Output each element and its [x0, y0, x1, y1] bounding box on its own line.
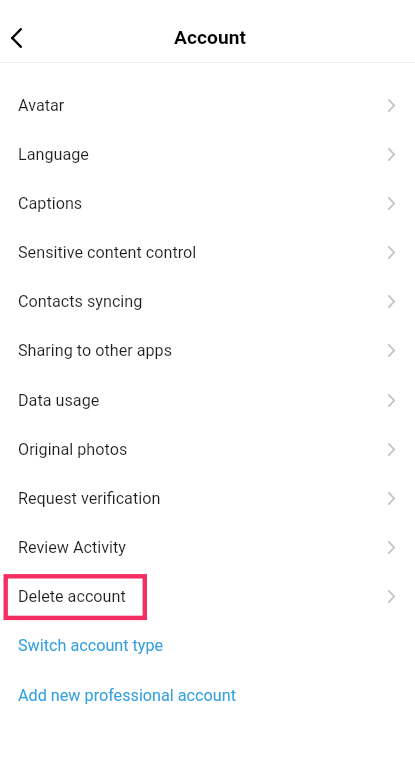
button[interactable]: Add new professional account: [0, 671, 415, 720]
button[interactable]: Delete account: [0, 572, 415, 621]
button[interactable]: Sensitive content control: [0, 228, 415, 277]
button[interactable]: Switch account type: [0, 621, 415, 670]
button[interactable]: Avatar: [0, 81, 415, 130]
staticText: Switch account type: [18, 636, 164, 655]
button[interactable]: Contacts syncing: [0, 277, 415, 326]
button[interactable]: Language: [0, 130, 415, 179]
staticText: Add new professional account: [18, 686, 236, 705]
button[interactable]: Captions: [0, 179, 415, 228]
staticText: Sharing to other apps: [18, 341, 173, 360]
button[interactable]: Review Activity: [0, 523, 415, 572]
staticText: Captions: [18, 194, 83, 213]
staticText: Contacts syncing: [18, 292, 143, 311]
staticText: Data usage: [18, 391, 100, 410]
button[interactable]: Sharing to other apps: [0, 326, 415, 375]
staticText: Original photos: [18, 440, 128, 459]
button[interactable]: Original photos: [0, 425, 415, 474]
staticText: Avatar: [18, 96, 65, 115]
staticText: Review Activity: [18, 538, 126, 557]
staticText: Request verification: [18, 489, 161, 508]
staticText: Delete account: [18, 587, 126, 606]
button[interactable]: Data usage: [0, 376, 415, 425]
button[interactable]: Back: [0, 16, 38, 62]
button[interactable]: Request verification: [0, 474, 415, 523]
staticText: Language: [18, 145, 89, 164]
staticText: Account: [174, 26, 246, 49]
staticText: Sensitive content control: [18, 243, 197, 262]
